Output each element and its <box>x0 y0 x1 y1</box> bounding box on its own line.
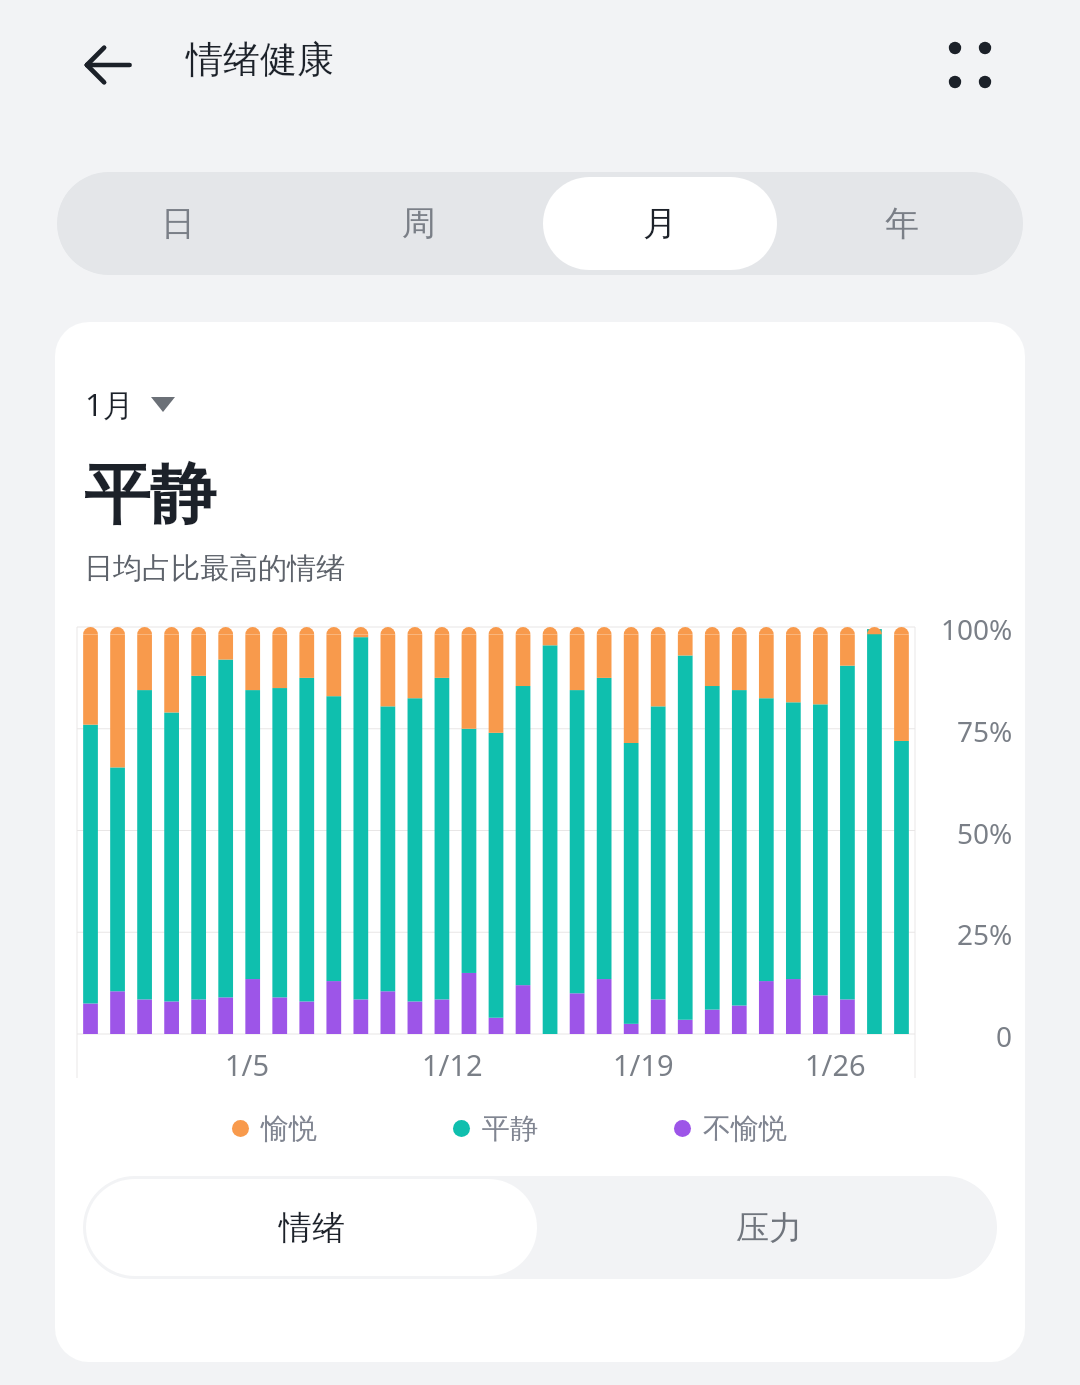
staticText: 75% <box>957 712 1013 750</box>
staticText: 1/19 <box>613 1045 674 1084</box>
staticText: 年 <box>885 202 919 245</box>
staticText: 1/12 <box>422 1045 483 1084</box>
staticText: 1月 <box>85 383 134 425</box>
staticText: 25% <box>957 915 1013 953</box>
staticText: 1/5 <box>225 1045 269 1084</box>
button[interactable]: 愉悦 <box>230 1107 319 1150</box>
button[interactable]: More options <box>925 20 1015 110</box>
staticText: 100% <box>941 610 1013 648</box>
button[interactable]: 年 <box>785 177 1019 270</box>
staticText: 情绪健康 <box>186 36 334 83</box>
button[interactable]: 日 <box>61 177 294 270</box>
staticText: 压力 <box>736 1207 802 1249</box>
button[interactable]: 平静 <box>451 1107 540 1150</box>
staticText: 不愉悦 <box>703 1111 787 1146</box>
button[interactable]: 情绪 <box>86 1179 537 1276</box>
staticText: 平静 <box>84 453 216 536</box>
staticText: 情绪 <box>279 1207 345 1249</box>
staticText: 50% <box>957 814 1013 852</box>
staticText: 1/26 <box>805 1045 866 1084</box>
button[interactable]: 周 <box>302 177 535 270</box>
button[interactable]: 1月 <box>82 379 178 429</box>
staticText: 日均占比最高的情绪 <box>84 550 345 587</box>
staticText: 愉悦 <box>261 1111 317 1146</box>
button[interactable]: 压力 <box>540 1176 997 1279</box>
button[interactable]: 不愉悦 <box>672 1107 789 1150</box>
button[interactable]: 月 <box>543 177 777 270</box>
button[interactable]: Back <box>73 30 143 100</box>
staticText: 月 <box>643 202 677 245</box>
staticText: 平静 <box>482 1111 538 1146</box>
staticText: 周 <box>402 202 436 245</box>
staticText: 日 <box>161 202 195 245</box>
staticText: 0 <box>996 1017 1013 1055</box>
